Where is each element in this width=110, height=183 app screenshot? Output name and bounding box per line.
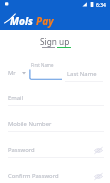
button[interactable]: Mr	[8, 69, 26, 77]
button[interactable]: Sign up	[40, 36, 70, 47]
button[interactable]: Show password	[93, 145, 104, 156]
staticText: Mr	[8, 69, 16, 77]
staticText: Mobile Number	[8, 120, 52, 128]
staticText: Last Name	[67, 70, 97, 78]
staticText: First Name	[31, 62, 54, 68]
staticText: Confirm Password	[8, 172, 59, 180]
button[interactable]: Show password	[93, 171, 104, 182]
staticText: Mols	[10, 14, 33, 28]
staticText: 6:34	[96, 2, 106, 9]
staticText: Password	[8, 146, 35, 154]
button[interactable]	[29, 68, 62, 80]
staticText: Email	[8, 94, 24, 102]
staticText: Pay	[36, 14, 54, 28]
